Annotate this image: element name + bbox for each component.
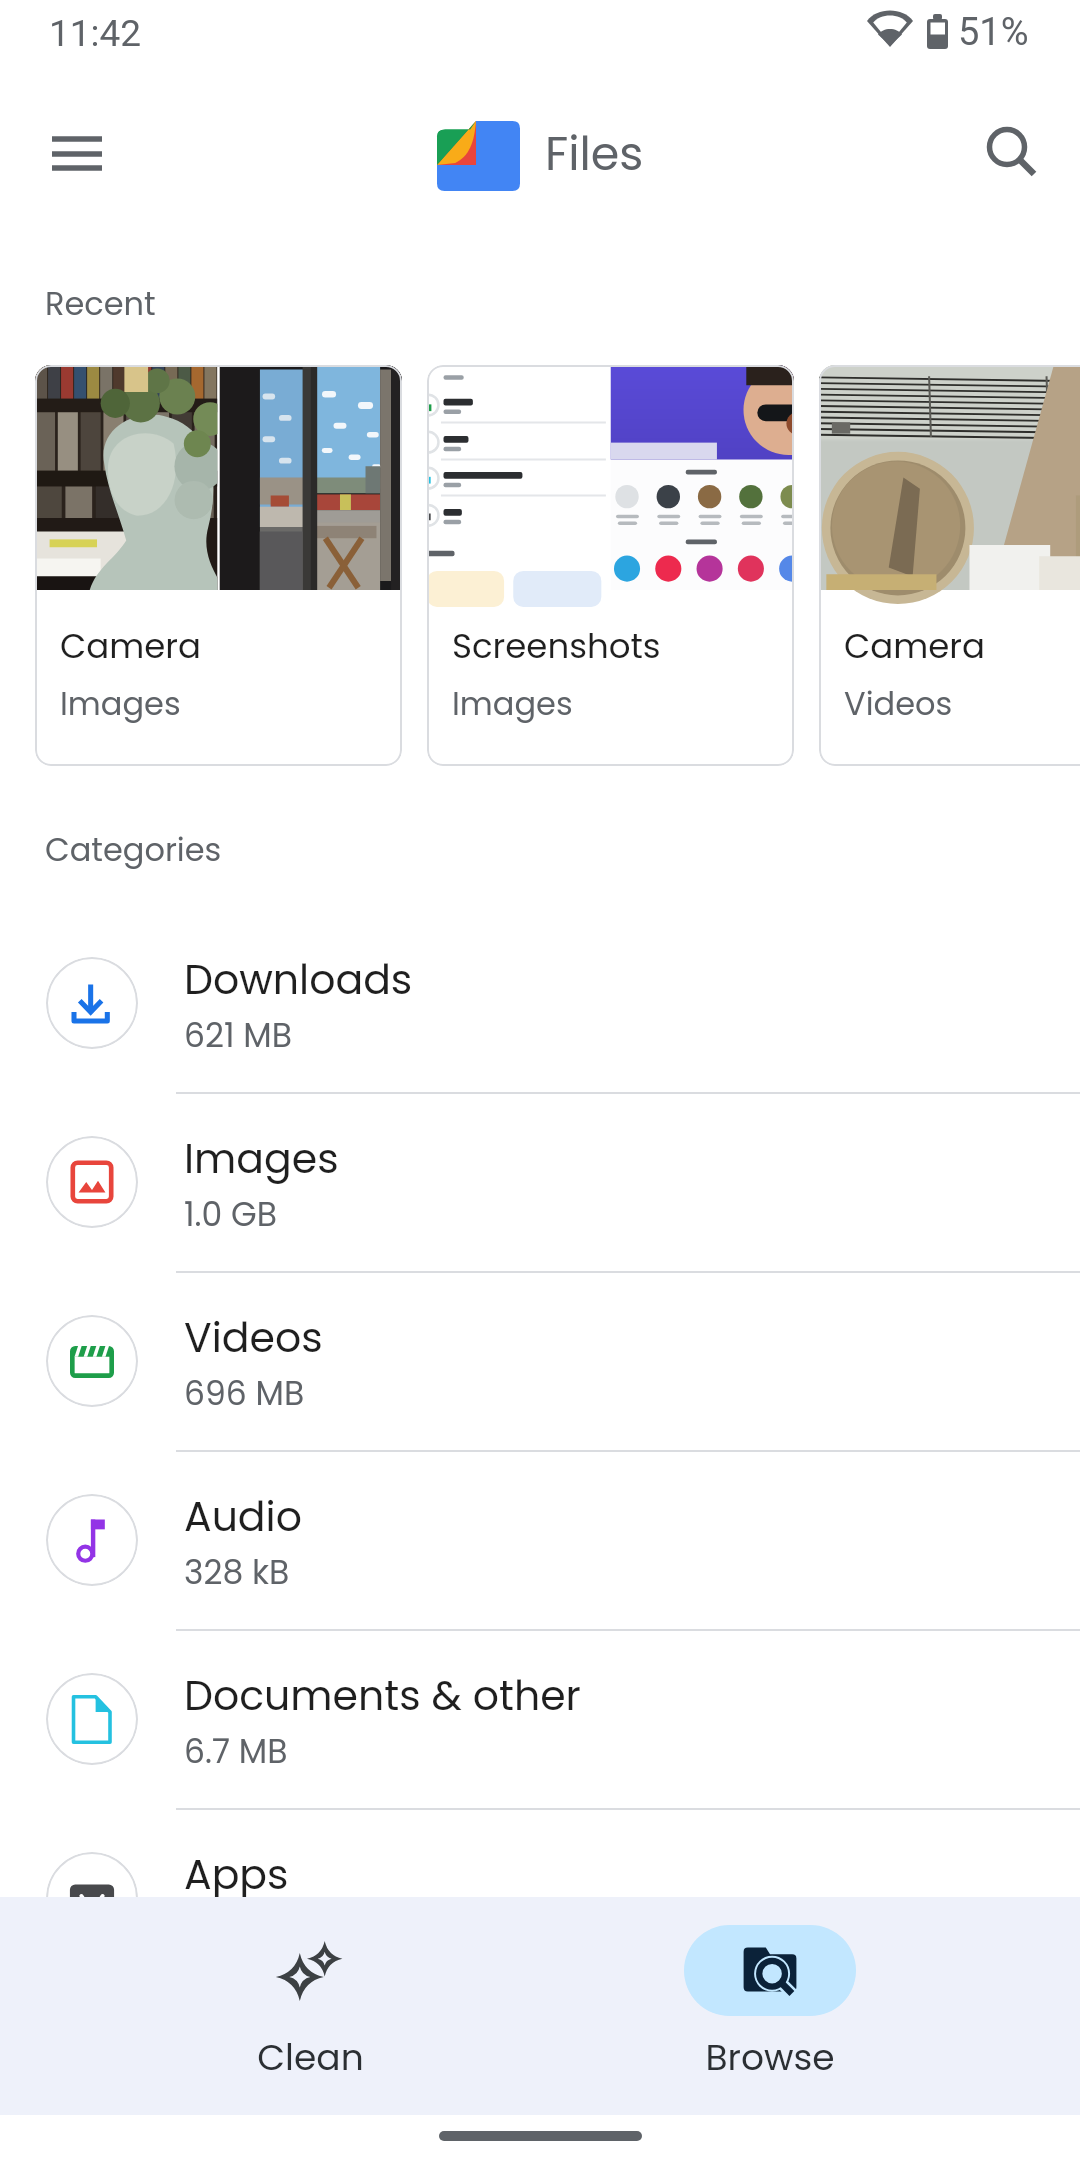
staticText: Videos — [844, 681, 953, 726]
button[interactable]: Videos — [0, 1271, 1080, 1450]
staticText: Apps — [184, 1846, 289, 1903]
staticText: Camera — [60, 622, 201, 670]
staticText: Camera — [844, 622, 985, 670]
staticText: Browse — [705, 2032, 835, 2082]
button[interactable]: Browse — [660, 1897, 880, 2115]
staticText: Categories — [45, 827, 222, 872]
staticText: Videos — [184, 1309, 323, 1366]
button[interactable]: Camera — [819, 365, 1080, 766]
button[interactable]: Apps — [0, 1808, 1080, 1987]
staticText: Downloads — [184, 951, 413, 1008]
staticText: 11:42 — [49, 12, 142, 55]
staticText: Images — [184, 1130, 339, 1187]
staticText: 328 kB — [184, 1549, 290, 1595]
staticText: 696 MB — [184, 1370, 305, 1416]
button[interactable]: Downloads — [0, 913, 1080, 1092]
staticText: 51% — [958, 10, 1029, 55]
staticText: Images — [452, 681, 573, 726]
staticText: 621 MB — [184, 1012, 292, 1058]
button[interactable]: Documents & other — [0, 1629, 1080, 1808]
staticText: 6.7 MB — [184, 1728, 288, 1774]
button[interactable]: Clean — [200, 1897, 420, 2115]
staticText: Images — [60, 681, 181, 726]
staticText: Documents & other — [184, 1667, 581, 1724]
button[interactable]: Audio — [0, 1450, 1080, 1629]
staticText: Recent — [45, 281, 156, 326]
staticText: Clean — [257, 2032, 364, 2082]
button[interactable]: Open navigation menu — [27, 99, 127, 209]
button[interactable]: Screenshots — [427, 365, 794, 766]
button[interactable]: Camera — [35, 365, 402, 766]
staticText: 1.0 GB — [184, 1191, 277, 1237]
button[interactable]: Search — [962, 102, 1052, 192]
staticText: Files — [545, 122, 644, 186]
staticText: Screenshots — [452, 622, 661, 670]
staticText: Audio — [184, 1488, 302, 1545]
button[interactable]: Images — [0, 1092, 1080, 1271]
